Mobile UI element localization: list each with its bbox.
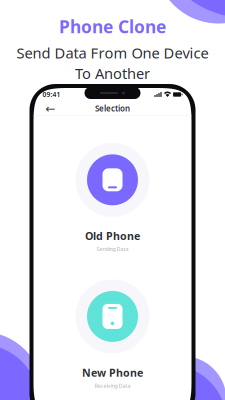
staticText: To Another: [75, 63, 150, 83]
button[interactable]: Back: [42, 101, 58, 115]
staticText: Send Data From One Device: [16, 43, 208, 62]
button[interactable]: Old Phone: [57, 143, 167, 252]
staticText: Phone Clone: [59, 15, 166, 38]
staticText: ←: [45, 102, 55, 115]
staticText: New Phone: [82, 365, 143, 380]
staticText: 09:41: [42, 90, 60, 99]
staticText: Old Phone: [85, 229, 140, 243]
button[interactable]: New Phone: [57, 279, 167, 389]
staticText: Sending Data: [96, 245, 128, 253]
staticText: Receiving Data: [94, 382, 130, 389]
staticText: Selection: [95, 103, 130, 114]
